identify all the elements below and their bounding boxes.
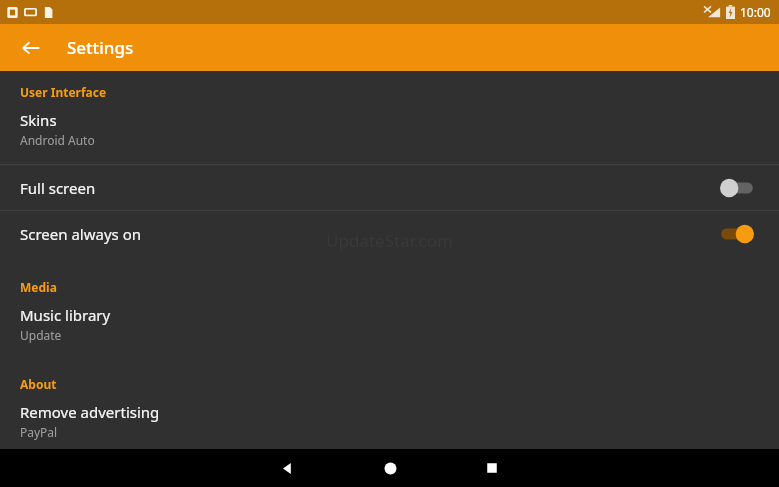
button[interactable]: Screen always on (0, 211, 779, 256)
button[interactable]: Back (270, 451, 304, 485)
button[interactable]: Home (373, 451, 407, 485)
button[interactable]: Recent apps (475, 451, 509, 485)
staticText: Media (20, 279, 57, 295)
staticText: Remove advertising (20, 402, 160, 422)
staticText: About (20, 376, 57, 392)
staticText: Settings (67, 36, 134, 59)
staticText: Skins (20, 110, 57, 130)
staticText: Android Auto (20, 132, 95, 148)
staticText: PayPal (20, 424, 58, 440)
staticText: User Interface (20, 84, 107, 100)
button[interactable]: Full screen (0, 165, 779, 210)
staticText: Music library (20, 305, 111, 325)
button[interactable]: Remove advertising (0, 395, 779, 442)
staticText: Update (20, 327, 62, 343)
staticText: Full screen (20, 178, 96, 198)
staticText: UpdateStar.com (0, 229, 779, 252)
button[interactable]: Music library (0, 298, 779, 345)
staticText: 10:00 (740, 4, 771, 20)
button[interactable]: Skins (0, 103, 779, 150)
staticText: Screen always on (20, 224, 141, 244)
button[interactable]: Back (14, 31, 48, 65)
